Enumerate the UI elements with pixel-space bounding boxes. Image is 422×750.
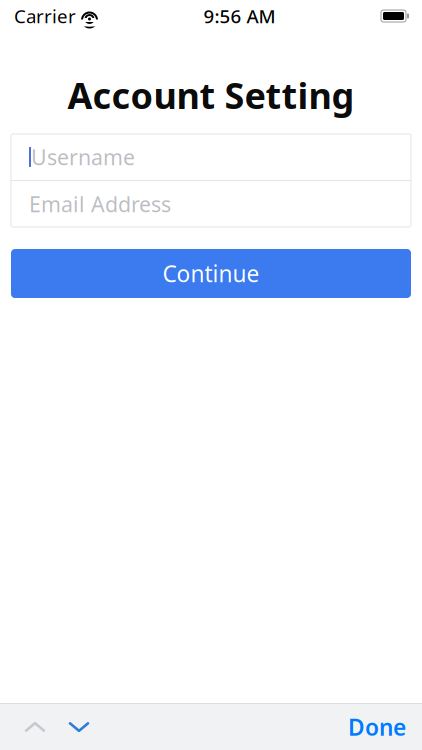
staticText: 9:56 AM xyxy=(203,4,275,28)
button[interactable]: Continue xyxy=(11,249,411,298)
staticText: Username xyxy=(31,143,135,171)
staticText: Done xyxy=(348,712,406,742)
button[interactable]: Username xyxy=(11,134,411,180)
staticText: Email Address xyxy=(29,190,171,218)
button[interactable]: Next field xyxy=(57,705,101,749)
staticText: Carrier xyxy=(14,4,76,28)
staticText: Continue xyxy=(162,258,259,288)
button[interactable]: Email Address xyxy=(11,181,411,227)
button[interactable]: Done xyxy=(336,705,418,749)
staticText: Account Setting xyxy=(67,71,354,119)
button[interactable]: Previous field xyxy=(13,705,57,749)
